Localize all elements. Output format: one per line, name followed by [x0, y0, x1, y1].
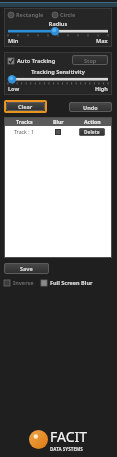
- staticText: Save: [20, 265, 33, 272]
- staticText: Radius: [8, 20, 108, 27]
- button[interactable]: Full Screen Blur: [41, 279, 93, 286]
- staticText: Tracks: [16, 118, 33, 125]
- button[interactable]: Circle: [52, 11, 76, 18]
- staticText: Inverse: [13, 279, 34, 286]
- button[interactable]: Track : 1: [4, 126, 112, 137]
- staticText: High: [95, 85, 108, 92]
- button[interactable]: Stop: [72, 55, 108, 65]
- staticText: Circle: [60, 11, 76, 18]
- button[interactable]: Undo: [69, 102, 112, 112]
- button[interactable]: Auto Tracking: [8, 57, 56, 64]
- button[interactable]: Clear: [6, 102, 45, 111]
- staticText: Action: [84, 118, 101, 125]
- staticText: Clear: [18, 103, 33, 110]
- staticText: Rectangle: [16, 11, 44, 18]
- staticText: Tracking Sensitivity: [8, 68, 108, 75]
- button[interactable]: Inverse: [4, 279, 34, 286]
- button[interactable]: Blur toggle: [55, 129, 61, 135]
- staticText: Stop: [84, 57, 97, 64]
- staticText: Undo: [83, 104, 98, 111]
- button[interactable]: Save: [4, 263, 49, 274]
- staticText: Full Screen Blur: [50, 279, 93, 286]
- staticText: Max: [96, 37, 108, 44]
- staticText: Min: [8, 37, 19, 44]
- staticText: FACIT: [50, 427, 88, 446]
- staticText: Track : 1: [14, 128, 34, 135]
- staticText: Blur: [53, 118, 64, 125]
- staticText: DATA SYSTEMS: [50, 446, 83, 452]
- staticText: Auto Tracking: [17, 57, 56, 64]
- staticText: Delete: [84, 129, 100, 136]
- button[interactable]: Delete: [79, 128, 105, 136]
- button[interactable]: Rectangle: [8, 11, 44, 18]
- staticText: Low: [8, 85, 20, 92]
